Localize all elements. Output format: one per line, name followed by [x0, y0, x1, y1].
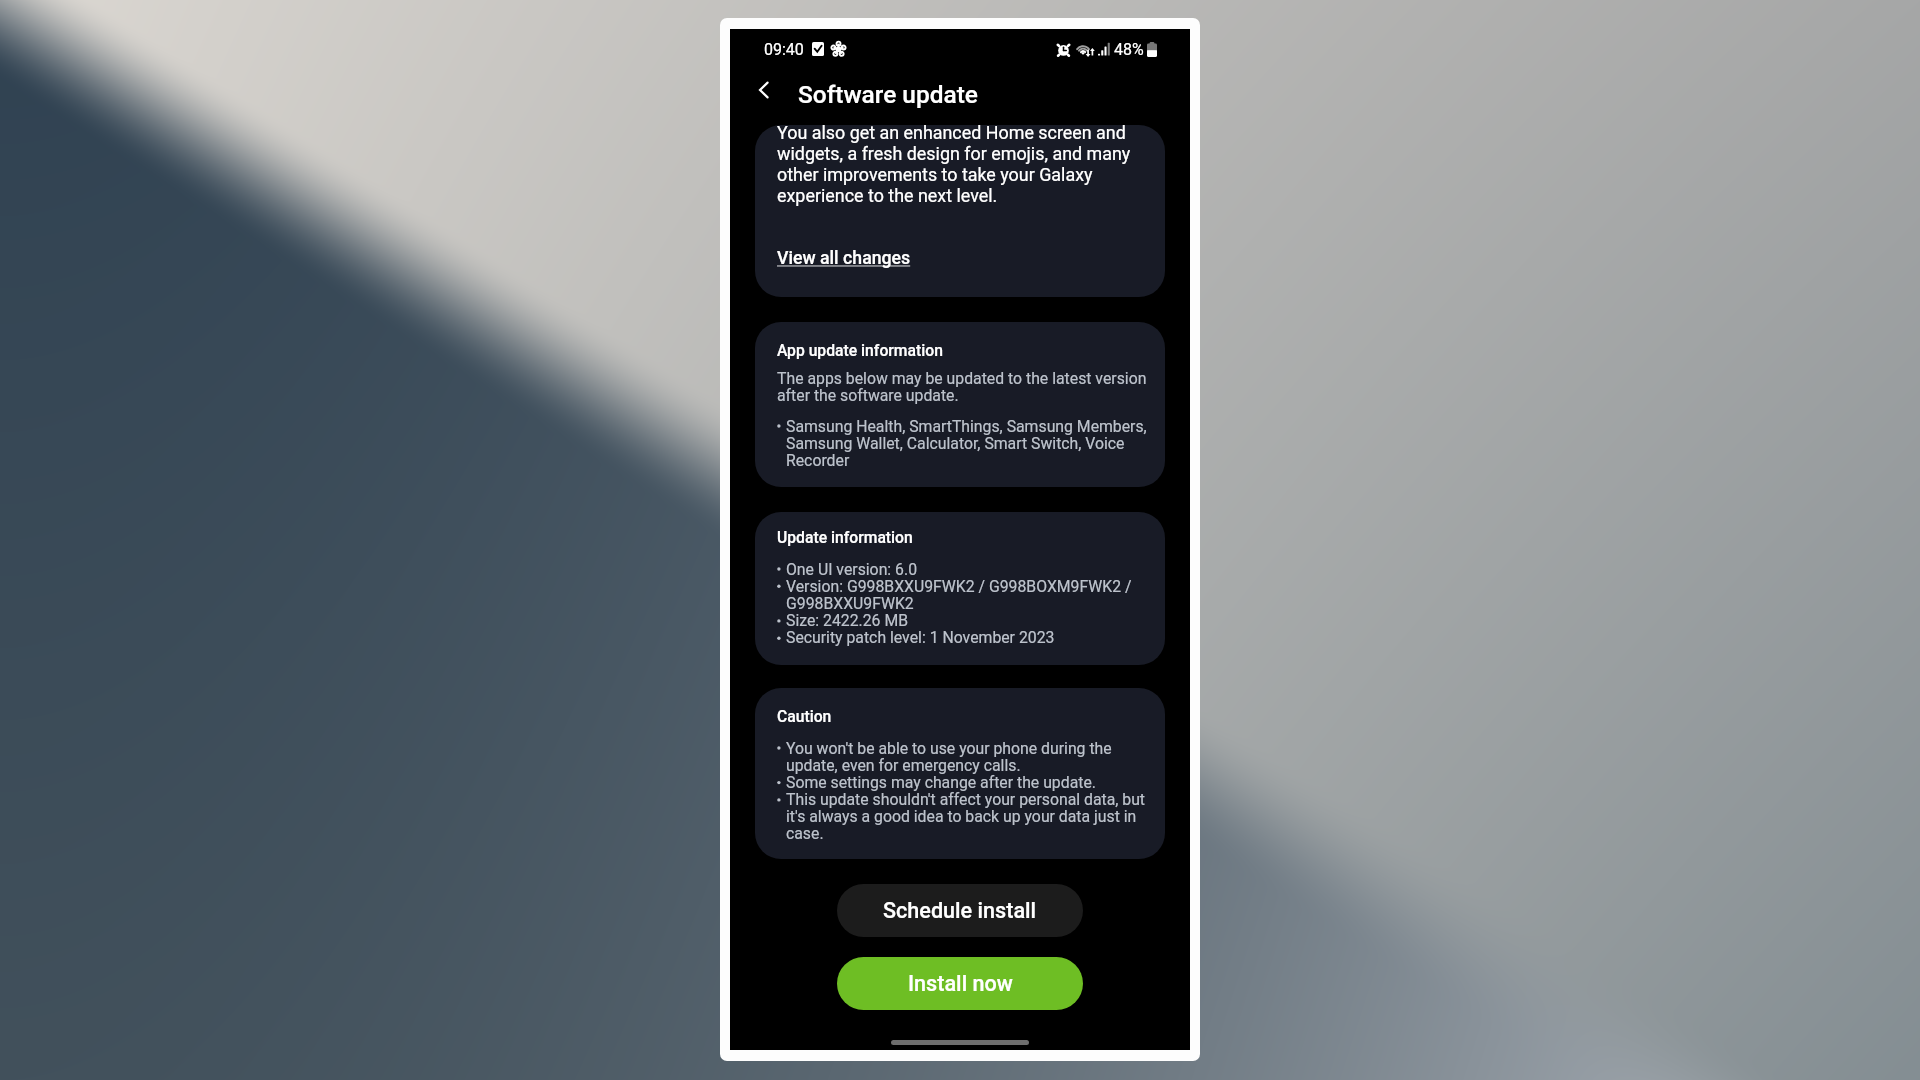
staticText: One UI version: 6.0 Version: G998BXXU9FW… — [786, 560, 1132, 647]
staticText: You won't be able to use your phone duri… — [786, 739, 1146, 843]
staticText: Schedule install — [883, 898, 1037, 923]
staticText: Samsung Health, SmartThings, Samsung Mem… — [786, 417, 1147, 470]
button[interactable]: Install now — [837, 957, 1083, 1010]
staticText: 09:40 — [764, 40, 804, 59]
staticText: Install now — [908, 971, 1013, 996]
button[interactable]: View all changes — [777, 248, 911, 269]
staticText: App update information — [777, 341, 943, 359]
staticText: You also get an enhanced Home screen and… — [777, 125, 1131, 206]
staticText: 48% — [1114, 40, 1144, 59]
staticText: Software update — [798, 80, 978, 109]
staticText: Update information — [777, 528, 913, 546]
staticText: View all changes — [777, 248, 911, 269]
button[interactable]: Schedule install — [837, 884, 1083, 937]
staticText: Caution — [777, 707, 832, 725]
button[interactable]: Back — [748, 74, 780, 106]
staticText: The apps below may be updated to the lat… — [777, 369, 1147, 405]
